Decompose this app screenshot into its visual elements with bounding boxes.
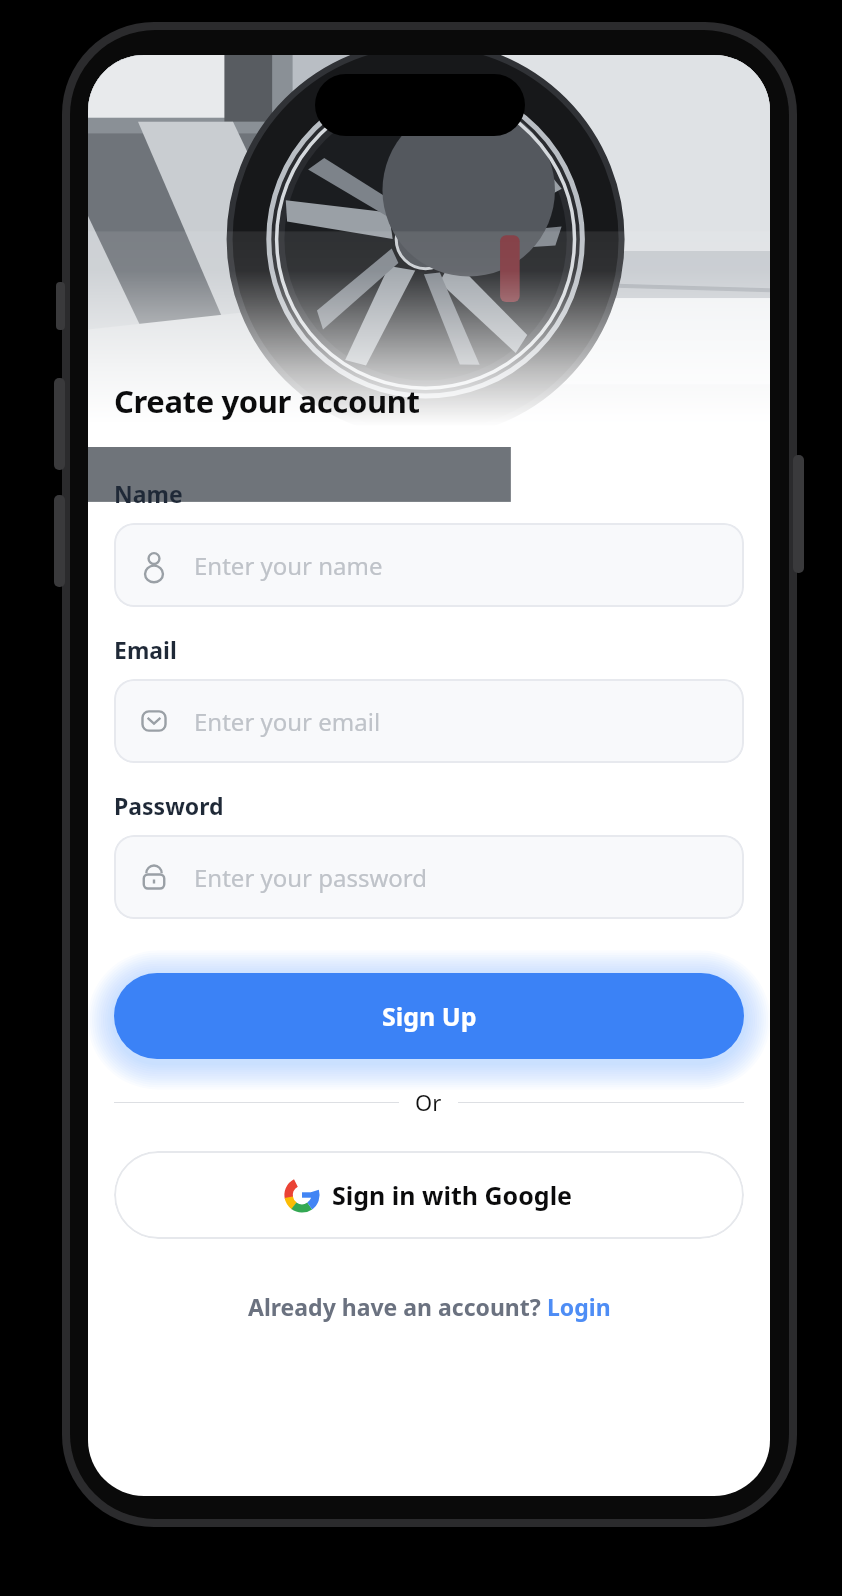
staticText: Create your account xyxy=(114,380,420,422)
staticText: Login xyxy=(547,1291,611,1322)
staticText: Or xyxy=(415,1087,442,1117)
staticText: Password xyxy=(114,790,224,821)
button[interactable]: Sign in with Google xyxy=(114,1151,744,1239)
button[interactable]: Enter your email xyxy=(114,679,744,763)
staticText: Sign Up xyxy=(382,999,477,1033)
staticText: Email xyxy=(114,634,177,665)
staticText: Enter your name xyxy=(194,549,383,582)
button[interactable]: Enter your name xyxy=(114,523,744,607)
staticText: Enter your password xyxy=(194,861,428,894)
button[interactable]: Already have an account? xyxy=(88,1291,770,1322)
button[interactable]: Enter your password xyxy=(114,835,744,919)
button[interactable]: Sign Up xyxy=(114,973,744,1059)
staticText: Name xyxy=(114,478,183,509)
staticText: Enter your email xyxy=(194,705,381,738)
staticText: Sign in with Google xyxy=(332,1178,573,1212)
staticText: Already have an account? xyxy=(248,1291,547,1322)
